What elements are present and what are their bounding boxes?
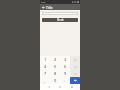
staticText: 9 xyxy=(64,71,67,76)
button[interactable]: Back xyxy=(46,84,52,90)
staticText: . xyxy=(64,78,66,83)
staticText: 9:30 xyxy=(41,1,46,4)
button[interactable]: Symbols xyxy=(70,63,80,70)
button[interactable]: 8 xyxy=(50,70,60,77)
button[interactable]: . xyxy=(60,77,70,84)
button[interactable]: Next xyxy=(42,18,78,22)
button[interactable]: Recents xyxy=(69,84,75,90)
staticText: Next xyxy=(57,18,64,22)
staticText: Title xyxy=(46,5,53,10)
button[interactable]: 1 xyxy=(40,56,50,63)
button[interactable]: 6 xyxy=(60,63,70,70)
staticText: 4 xyxy=(44,64,47,69)
button[interactable]: 3 xyxy=(60,56,70,63)
button[interactable]: 0 xyxy=(50,77,60,84)
button[interactable]: Home xyxy=(57,84,63,90)
staticText: 7 xyxy=(44,71,47,76)
button[interactable]: Backspace xyxy=(70,56,80,63)
staticText: 5 xyxy=(54,64,57,69)
button[interactable]: , xyxy=(40,77,50,84)
button[interactable] xyxy=(42,12,78,15)
button[interactable]: Back xyxy=(41,5,45,9)
staticText: 3 xyxy=(64,57,67,62)
button[interactable]: 4 xyxy=(40,63,50,70)
button[interactable]: 7 xyxy=(40,70,50,77)
button[interactable]: Space xyxy=(70,70,80,77)
staticText: 6 xyxy=(64,64,67,69)
button[interactable]: Enter xyxy=(70,77,80,84)
staticText: 8 xyxy=(54,71,57,76)
staticText: 0 xyxy=(54,78,57,83)
button[interactable]: 9 xyxy=(60,70,70,77)
button[interactable]: 5 xyxy=(50,63,60,70)
staticText: 1 xyxy=(44,57,47,62)
button[interactable]: Back xyxy=(40,4,80,10)
staticText: 2 xyxy=(54,57,57,62)
button[interactable]: 2 xyxy=(50,56,60,63)
staticText: , xyxy=(44,78,46,83)
